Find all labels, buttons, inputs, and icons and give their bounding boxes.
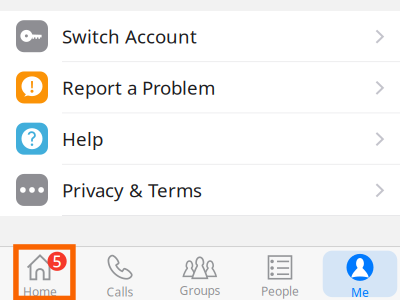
button[interactable]: People bbox=[242, 254, 317, 300]
staticText: Me bbox=[351, 284, 369, 300]
button[interactable]: Help bbox=[0, 113, 400, 165]
staticText: Calls bbox=[106, 284, 133, 300]
staticText: Home bbox=[23, 284, 57, 300]
staticText: Privacy & Terms bbox=[62, 178, 202, 202]
button[interactable]: Home bbox=[2, 254, 77, 300]
button[interactable]: Calls bbox=[82, 254, 157, 300]
staticText: Report a Problem bbox=[62, 75, 215, 100]
button[interactable]: Groups bbox=[162, 254, 237, 300]
button[interactable]: Privacy & Terms bbox=[0, 165, 400, 216]
staticText: People bbox=[261, 283, 299, 299]
staticText: Switch Account bbox=[62, 24, 197, 49]
staticText: Groups bbox=[179, 282, 220, 298]
button[interactable]: Report a Problem bbox=[0, 62, 400, 113]
staticText: Help bbox=[62, 126, 103, 151]
button[interactable]: Me bbox=[322, 254, 397, 300]
button[interactable]: Switch Account bbox=[0, 11, 400, 62]
staticText: 5 bbox=[53, 251, 62, 272]
